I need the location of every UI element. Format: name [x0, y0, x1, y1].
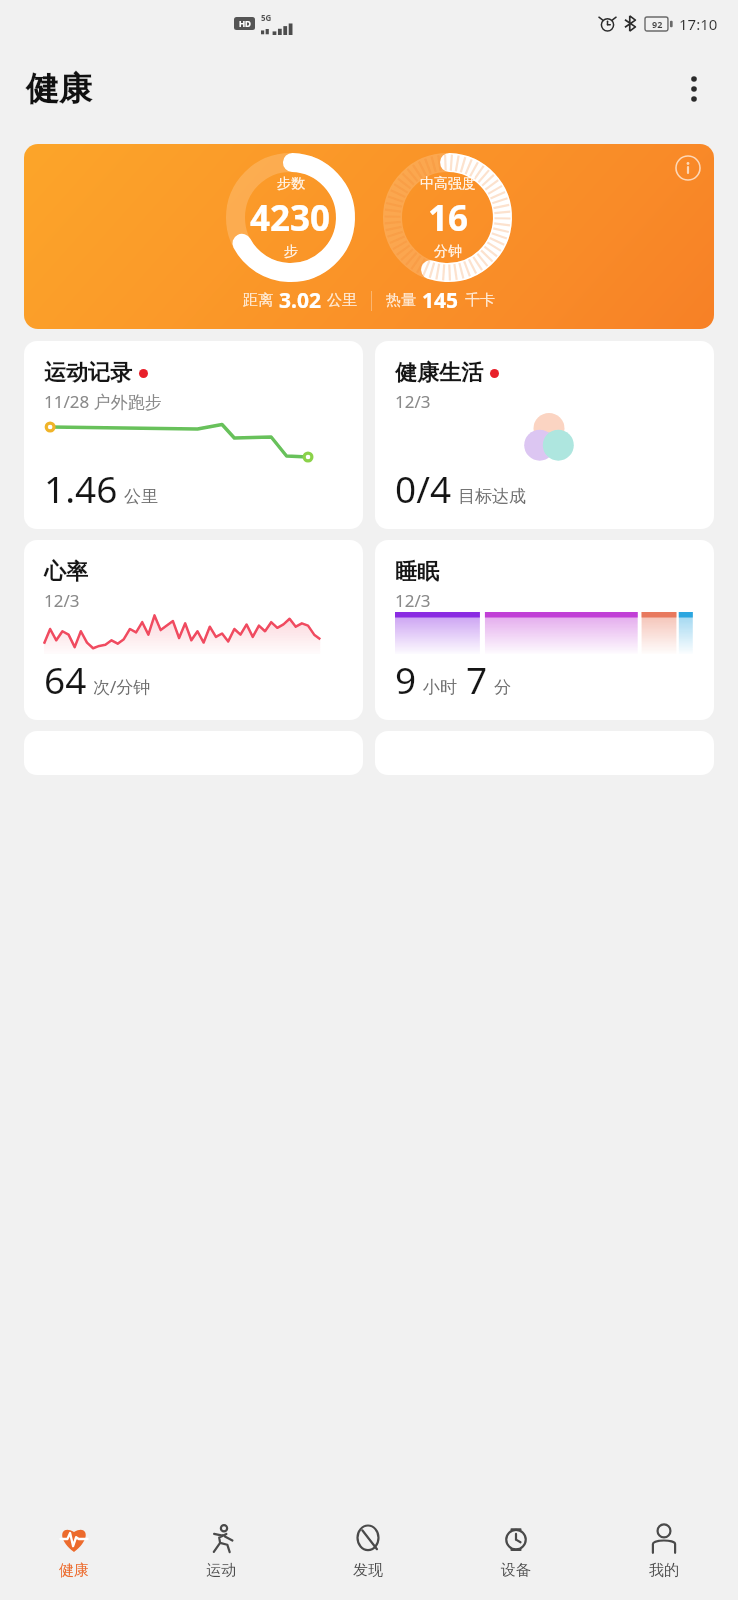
staticText: 4230	[250, 194, 331, 242]
staticText: 中高强度	[420, 175, 476, 193]
staticText: 发现	[353, 1561, 383, 1580]
staticText: 5G	[261, 12, 272, 23]
staticText: 12/3	[395, 390, 431, 413]
button[interactable]: 运动	[147, 1504, 294, 1600]
staticText: 0/4	[395, 463, 452, 513]
staticText: 设备	[501, 1561, 531, 1580]
staticText: 距离	[243, 291, 273, 310]
staticText: 健康生活	[395, 359, 483, 387]
staticText: 16	[428, 194, 469, 242]
staticText: 心率	[44, 558, 88, 586]
staticText: 运动	[206, 1561, 236, 1580]
staticText: 7	[466, 654, 488, 704]
staticText: 12/3	[395, 589, 431, 612]
staticText: 公里	[124, 486, 158, 507]
staticText: 1.46	[44, 463, 118, 513]
staticText: 千卡	[465, 291, 495, 310]
staticText: 健康	[59, 1561, 89, 1580]
staticText: 目标达成	[458, 486, 526, 507]
staticText: 步数	[277, 175, 305, 193]
staticText: 92	[652, 18, 663, 30]
staticText: 运动记录	[44, 359, 132, 387]
staticText: 健康	[26, 68, 92, 110]
staticText: 9	[395, 654, 417, 704]
staticText: 我的	[649, 1561, 679, 1580]
staticText: 次/分钟	[93, 675, 151, 698]
staticText: 步	[284, 243, 298, 261]
staticText: 3.02	[279, 286, 321, 315]
staticText: 分钟	[434, 243, 462, 261]
staticText: 11/28 户外跑步	[44, 390, 162, 413]
button[interactable]: Information	[670, 150, 706, 186]
button[interactable]: More options	[672, 67, 716, 111]
staticText: 公里	[327, 291, 357, 310]
button[interactable]: 睡眠	[375, 540, 714, 720]
button[interactable]: 健康生活	[375, 341, 714, 529]
button[interactable]: 心率	[24, 540, 363, 720]
staticText: 145	[422, 286, 459, 315]
button[interactable]: 我的	[590, 1504, 738, 1600]
staticText: 热量	[386, 291, 416, 310]
staticText: 12/3	[44, 589, 80, 612]
staticText: 分	[494, 677, 511, 698]
button[interactable]: 设备	[442, 1504, 590, 1600]
staticText: 睡眠	[395, 558, 439, 586]
button[interactable]: 发现	[294, 1504, 442, 1600]
button[interactable]: 健康	[0, 1504, 147, 1600]
staticText: HD	[239, 18, 251, 29]
staticText: 小时	[423, 677, 457, 698]
button[interactable]: 运动记录	[24, 341, 363, 529]
button[interactable]: Information	[24, 144, 714, 329]
staticText: 64	[44, 654, 87, 704]
staticText: 17:10	[679, 14, 718, 34]
